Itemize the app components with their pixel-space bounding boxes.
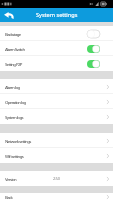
button[interactable]: Network settings xyxy=(0,133,113,148)
button[interactable]: Back xyxy=(0,193,113,200)
staticText: Alarm log xyxy=(5,84,20,90)
staticText: Setting P2P xyxy=(5,61,22,67)
staticText: Version xyxy=(5,176,17,182)
staticText: 2.5.0 xyxy=(53,176,60,181)
staticText: System logs xyxy=(5,114,23,120)
button[interactable]: Switch on xyxy=(87,60,100,68)
button[interactable]: System logs xyxy=(0,109,113,124)
staticText: Network settings xyxy=(5,138,31,144)
button[interactable]: Version xyxy=(0,171,113,186)
button[interactable]: Alarm log xyxy=(0,79,113,94)
button[interactable]: Alarm Switch xyxy=(0,41,113,56)
button[interactable]: Setting P2P xyxy=(0,56,113,71)
staticText: Alarm Switch xyxy=(5,46,25,52)
button[interactable]: Backstage xyxy=(0,26,113,41)
button[interactable]: Operation log xyxy=(0,94,113,109)
button[interactable]: Switch off xyxy=(87,30,100,38)
staticText: Wifi settings xyxy=(5,153,24,159)
staticText: System settings xyxy=(36,11,78,19)
staticText: Operation log xyxy=(5,99,26,105)
button[interactable]: Back xyxy=(0,8,17,22)
staticText: Back xyxy=(5,194,13,200)
staticText: Backstage xyxy=(5,31,21,37)
button[interactable]: Switch on xyxy=(87,45,100,53)
button[interactable]: Wifi settings xyxy=(0,148,113,163)
